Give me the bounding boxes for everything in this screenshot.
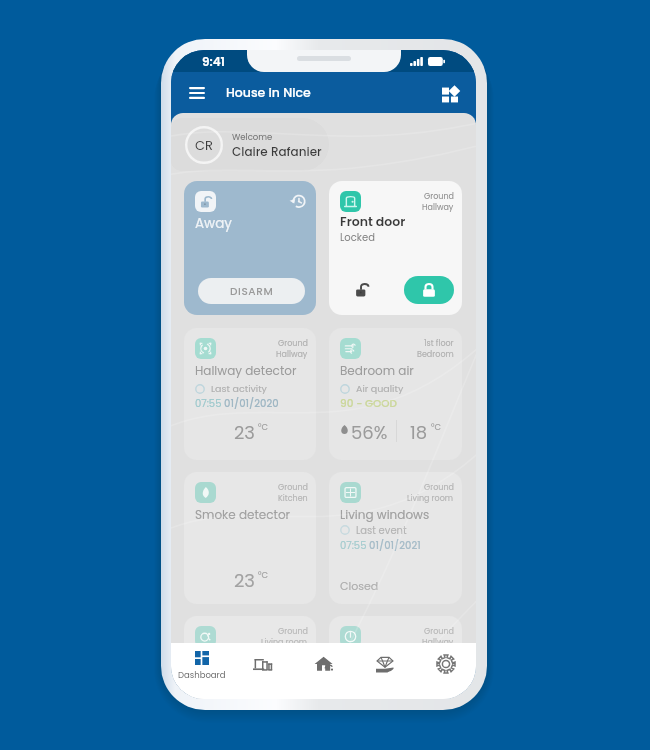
staticText: 9:41 — [202, 53, 225, 70]
staticText: DISARM — [230, 284, 274, 299]
button[interactable]: Ground — [184, 616, 316, 699]
staticText: Hallway detector — [195, 362, 297, 379]
staticText: Air quality — [356, 382, 404, 395]
staticText: Ground — [424, 191, 454, 202]
staticText: Smoke detector — [195, 506, 291, 523]
button[interactable]: Ground — [184, 472, 316, 604]
staticText: 90 - GOOD — [340, 396, 398, 411]
button[interactable]: DISARM — [198, 278, 305, 304]
staticText: Hallway — [422, 637, 454, 648]
staticText: Ground — [424, 482, 454, 493]
staticText: 18 — [410, 420, 428, 445]
staticText: Hallway — [422, 202, 454, 213]
staticText: Ground — [278, 338, 308, 349]
staticText: Away — [195, 214, 232, 233]
button[interactable]: Ground — [329, 472, 462, 604]
staticText: 23 — [234, 568, 255, 593]
staticText: Last event — [356, 523, 407, 537]
staticText: Living windows — [340, 506, 430, 523]
staticText: 07:55 01/01/2020 — [195, 396, 279, 410]
staticText: 1st floor — [424, 338, 454, 349]
staticText: °C — [258, 569, 269, 581]
button[interactable]: Unlock — [351, 279, 373, 301]
staticText: °C — [431, 421, 442, 433]
staticText: Closed — [340, 578, 379, 593]
button[interactable]: Customize dashboard — [437, 80, 463, 106]
button[interactable]: Home — [293, 643, 354, 699]
button[interactable]: Lock — [404, 276, 454, 304]
staticText: Claire Rafanier — [232, 143, 322, 160]
staticText: Ground — [278, 482, 308, 493]
button[interactable]: Menu — [184, 80, 210, 106]
button[interactable]: CR — [171, 118, 329, 171]
staticText: Front door — [340, 213, 406, 230]
staticText: Bedroom — [417, 349, 454, 360]
button[interactable]: Ground — [329, 616, 462, 699]
staticText: 07:55 01/01/2021 — [340, 538, 421, 552]
staticText: Dashboard — [178, 669, 226, 681]
staticText: 56% — [351, 420, 388, 445]
staticText: House in Nice — [226, 84, 311, 101]
button[interactable]: Ground — [184, 328, 316, 460]
button[interactable]: History — [184, 181, 316, 315]
staticText: Ground — [278, 626, 308, 637]
staticText: Kitchen — [278, 493, 308, 504]
staticText: Hallway — [276, 349, 308, 360]
button[interactable]: Services — [354, 643, 415, 699]
button[interactable]: Ground — [329, 181, 462, 315]
button[interactable]: History — [288, 191, 308, 211]
button[interactable]: Settings — [415, 643, 476, 699]
button[interactable]: Devices — [232, 643, 293, 699]
button[interactable]: 1st floor — [329, 328, 462, 460]
staticText: Welcome — [232, 131, 273, 143]
staticText: 23 — [234, 420, 255, 445]
staticText: Locked — [340, 230, 375, 244]
staticText: Living room — [261, 637, 308, 648]
staticText: °C — [258, 421, 269, 433]
staticText: CR — [195, 136, 213, 154]
staticText: Bedroom air — [340, 362, 414, 379]
button[interactable]: Dashboard — [171, 643, 232, 699]
staticText: Ground — [424, 626, 454, 637]
staticText: Living room — [407, 493, 454, 504]
staticText: Last activity — [211, 382, 267, 395]
